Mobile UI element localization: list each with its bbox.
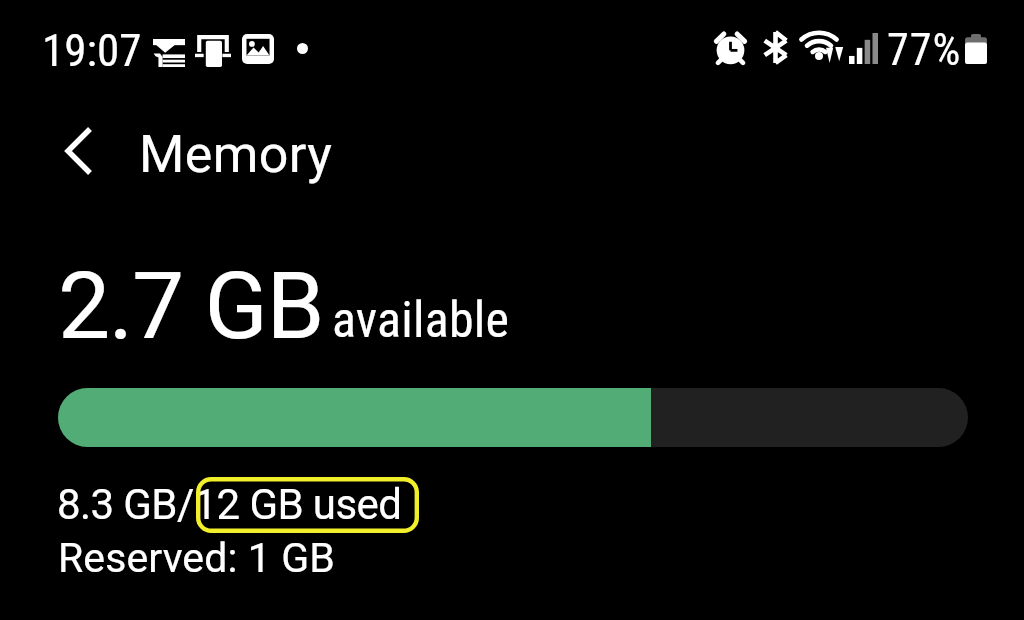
staticText: 19:07 [42,24,142,77]
button[interactable]: Back [48,120,110,182]
staticText: Reserved: 1 GB [58,534,335,582]
button[interactable]: Memory usage 8.3 GB of 12 GB [58,388,968,447]
staticText: available [332,291,510,350]
staticText: 77% [887,24,962,76]
staticText: 8.3 GB/12 GB used [57,480,402,529]
staticText: Memory [139,124,333,185]
staticText: 2.7 GB [58,252,324,361]
